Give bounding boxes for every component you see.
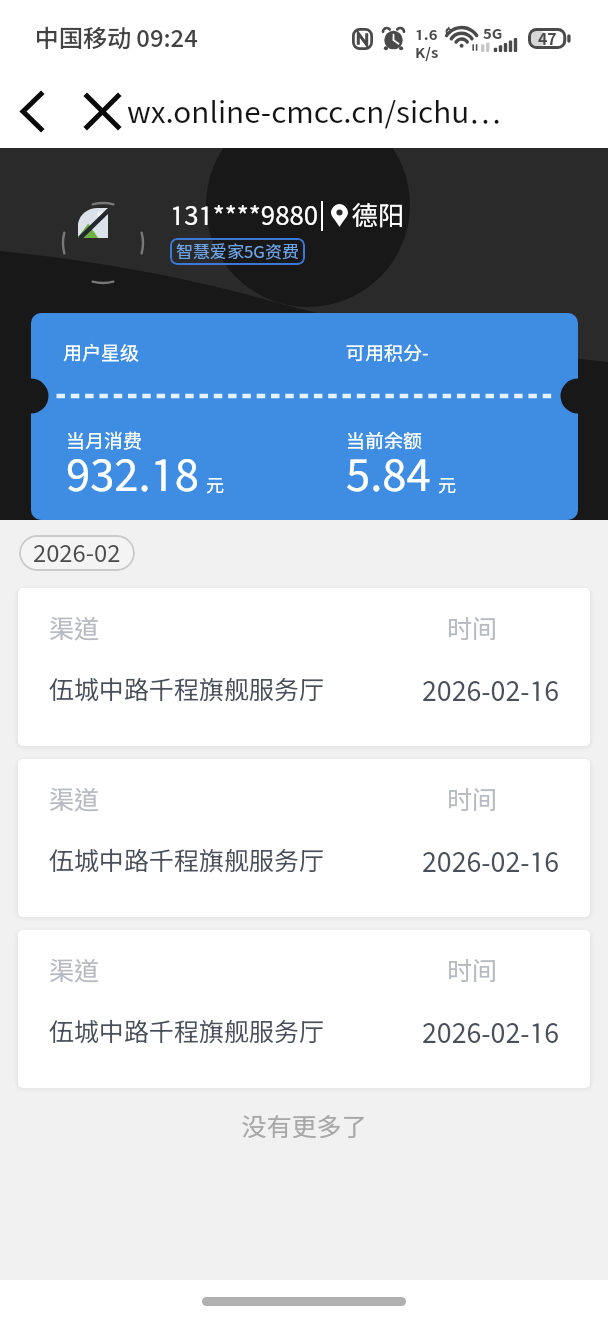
staticText: 中国移动 09:24 <box>35 24 198 52</box>
button[interactable]: 2026-02 <box>19 535 135 571</box>
staticText: 2026-02-16 <box>422 675 560 707</box>
staticText: 伍城中路千程旗舰服务厅 <box>49 846 325 876</box>
staticText: 932.18 <box>66 448 199 500</box>
staticText: 伍城中路千程旗舰服务厅 <box>49 675 325 705</box>
staticText: 2026-02 <box>33 539 121 567</box>
staticText: 当月消费 <box>66 430 143 452</box>
staticText: 1.6 <box>415 25 438 43</box>
staticText: 元 <box>206 475 224 496</box>
staticText: 可用积分- <box>346 342 429 364</box>
staticText: 5G <box>483 24 503 42</box>
staticText: 元 <box>438 475 456 496</box>
staticText: 渠道 <box>49 614 100 644</box>
staticText: 当前余额 <box>346 430 423 452</box>
button[interactable]: 渠道 <box>18 759 590 917</box>
staticText: 渠道 <box>49 785 100 815</box>
staticText: 131****9880 <box>170 200 318 231</box>
staticText: 47 <box>538 29 557 48</box>
staticText: wx.online-cmcc.cn/sichu… <box>127 94 501 129</box>
button[interactable]: 渠道 <box>18 930 590 1088</box>
staticText: 德阳 <box>352 200 405 231</box>
staticText: 渠道 <box>49 956 100 986</box>
staticText: 用户星级 <box>63 342 140 364</box>
button[interactable]: Close <box>73 82 131 140</box>
staticText: K/s <box>415 43 439 61</box>
staticText: 2026-02-16 <box>422 846 560 878</box>
staticText: 没有更多了 <box>0 1112 608 1142</box>
button[interactable]: 渠道 <box>18 588 590 746</box>
staticText: 智慧爱家5G资费 <box>176 242 299 262</box>
staticText: 时间 <box>447 614 498 644</box>
button[interactable]: Back <box>4 83 60 139</box>
staticText: 伍城中路千程旗舰服务厅 <box>49 1017 325 1047</box>
staticText: 5.84 <box>346 448 431 500</box>
staticText: 时间 <box>447 785 498 815</box>
staticText: 2026-02-16 <box>422 1017 560 1049</box>
staticText: 时间 <box>447 956 498 986</box>
button[interactable]: 智慧爱家5G资费 <box>170 238 305 265</box>
